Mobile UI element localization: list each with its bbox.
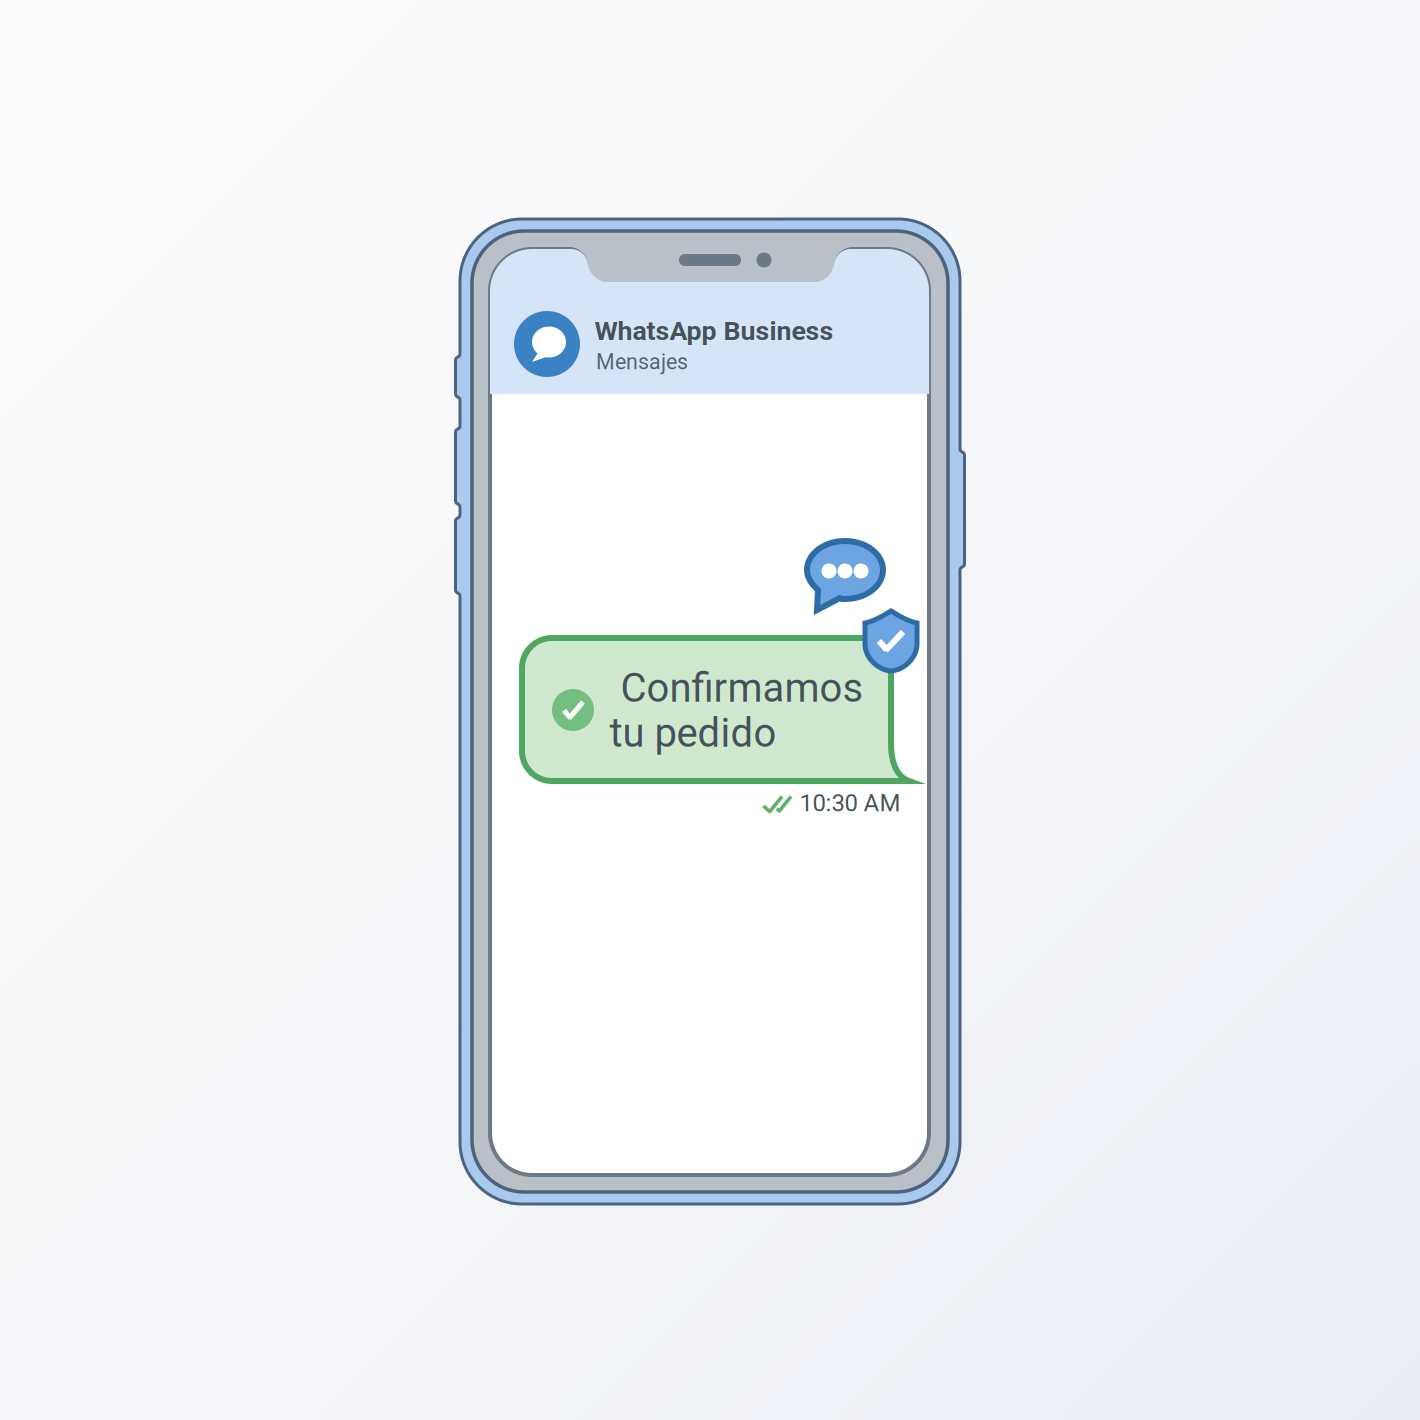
staticText: 10:30 AM	[799, 789, 900, 817]
staticText: Confirmamos	[620, 665, 863, 711]
staticText: tu pedido	[609, 710, 776, 756]
button[interactable]: WhatsApp Business	[0, 0, 1420, 1420]
staticText: Mensajes	[596, 349, 688, 374]
staticText: WhatsApp Business	[594, 315, 833, 347]
button[interactable]: Confirmamos	[0, 0, 1420, 1420]
